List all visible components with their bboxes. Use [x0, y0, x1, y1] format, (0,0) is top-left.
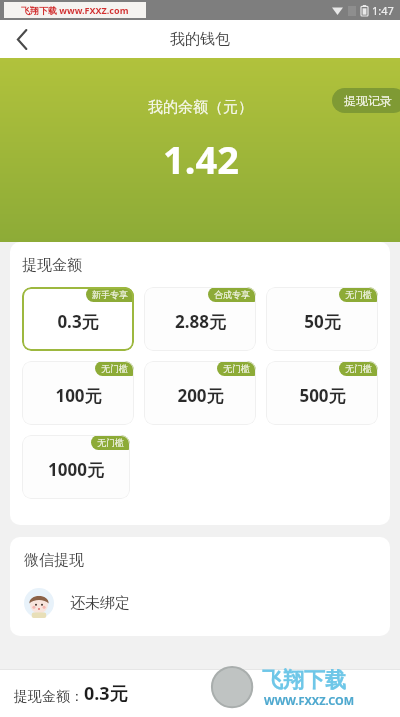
staticText: 0.3元	[84, 681, 128, 706]
staticText: 500元	[299, 384, 346, 407]
staticText: 我的钱包	[170, 30, 230, 49]
staticText: 飞翔下载	[262, 667, 346, 693]
staticText: 微信提现	[24, 551, 84, 570]
staticText: 无门槛	[101, 363, 128, 374]
staticText: 1000元	[48, 458, 104, 481]
staticText: 1:47	[372, 3, 394, 18]
button[interactable]: 提现记录	[332, 88, 400, 113]
button[interactable]: 新手专享	[22, 287, 134, 351]
staticText: 0.3元	[57, 310, 99, 333]
staticText: 无门槛	[97, 437, 124, 448]
button[interactable]: 无门槛	[22, 361, 134, 425]
staticText: 200元	[177, 384, 224, 407]
staticText: 无门槛	[223, 363, 250, 374]
staticText: 提现记录	[344, 93, 392, 108]
staticText: 无门槛	[345, 289, 372, 300]
button[interactable]: 无门槛	[22, 435, 130, 499]
staticText: 无门槛	[345, 363, 372, 374]
button[interactable]: Back	[0, 20, 44, 58]
button[interactable]: 还未绑定	[24, 588, 376, 618]
staticText: 飞翔下载 www.FXXZ.com	[21, 4, 129, 16]
staticText: 提现金额：	[14, 688, 84, 706]
staticText: 提现金额	[22, 256, 82, 275]
button[interactable]: 无门槛	[266, 287, 378, 351]
button[interactable]: 合成专享	[144, 287, 256, 351]
button[interactable]: 无门槛	[266, 361, 378, 425]
staticText: 50元	[304, 310, 341, 333]
staticText: WWW.FXXZ.COM	[264, 693, 355, 708]
button[interactable]: 无门槛	[144, 361, 256, 425]
staticText: 1.42	[163, 133, 239, 185]
staticText: 我的余额（元）	[148, 98, 253, 117]
staticText: 新手专享	[92, 289, 128, 300]
staticText: 合成专享	[214, 289, 250, 300]
staticText: 100元	[55, 384, 102, 407]
staticText: 还未绑定	[70, 594, 130, 613]
staticText: 2.88元	[175, 310, 226, 333]
